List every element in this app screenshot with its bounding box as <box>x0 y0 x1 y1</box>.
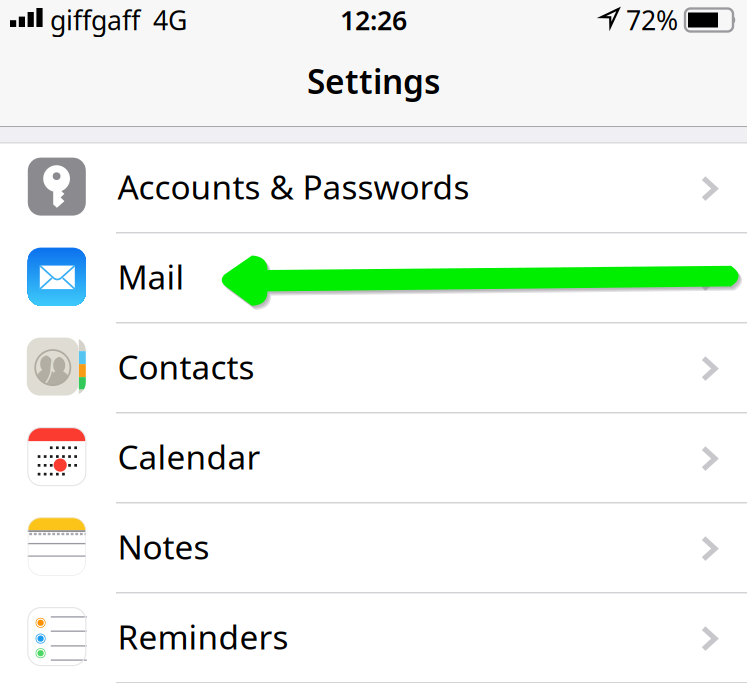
staticText: 4G <box>153 2 187 38</box>
staticText: 72% <box>626 2 678 38</box>
staticText: Calendar <box>117 434 260 479</box>
button[interactable]: Calendar <box>0 414 747 504</box>
button[interactable]: Mail <box>0 234 747 324</box>
staticText: Contacts <box>117 344 254 389</box>
staticText: Notes <box>117 524 209 569</box>
staticText: Reminders <box>117 614 288 659</box>
staticText: giffgaff <box>50 2 140 38</box>
staticText: Accounts & Passwords <box>117 164 469 209</box>
button[interactable]: Notes <box>0 504 747 594</box>
button[interactable]: Accounts & Passwords <box>0 144 747 234</box>
staticText: 12:26 <box>340 2 407 38</box>
staticText: Mail <box>117 254 184 299</box>
button[interactable]: Reminders <box>0 594 747 683</box>
staticText: Settings <box>307 59 440 103</box>
button[interactable]: Contacts <box>0 324 747 414</box>
